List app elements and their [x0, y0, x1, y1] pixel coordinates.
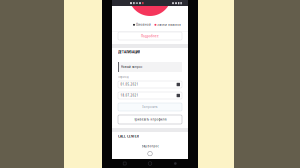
staticText: Привязать к профилю — [133, 118, 166, 121]
button[interactable]: Подробнее — [118, 32, 182, 40]
button[interactable]: Привязать к профилю — [118, 115, 182, 124]
button[interactable]: 18.07.2021 — [118, 92, 182, 99]
button[interactable]: Основной — [133, 23, 151, 27]
staticText: CALL CENTER — [118, 134, 139, 138]
staticText: ДЕТАЛИЗАЦИЯ — [118, 50, 140, 54]
staticText: Ваш вопрос — [141, 144, 158, 148]
button[interactable]: Back — [163, 159, 188, 168]
staticText: 18.07.2021 — [120, 94, 138, 97]
button[interactable]: Recents — [112, 159, 137, 168]
staticText: Записи вызовов — [157, 23, 181, 27]
button[interactable]: 01.05.2021 — [118, 81, 182, 88]
button[interactable]: Home — [137, 159, 163, 168]
staticText: Основной — [136, 23, 151, 27]
button[interactable]: Запросить — [118, 103, 182, 111]
staticText: Новый запрос — [121, 65, 142, 69]
staticText: 01.05.2021 — [120, 83, 138, 86]
staticText: Подробнее — [141, 34, 159, 38]
button[interactable]: Записи вызовов — [154, 23, 181, 27]
staticText: Запросить — [142, 105, 158, 109]
staticText: Период — [118, 75, 129, 79]
